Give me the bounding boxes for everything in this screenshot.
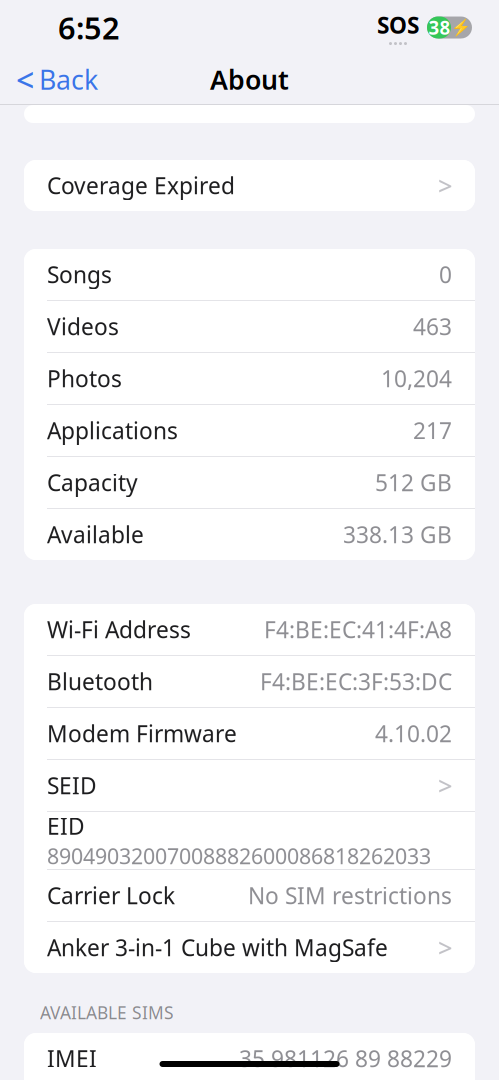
staticText: IMEI xyxy=(47,1043,97,1074)
staticText: 38 xyxy=(428,15,450,40)
button[interactable]: Applications xyxy=(24,405,475,456)
staticText: 463 xyxy=(413,311,452,341)
button[interactable]: Capacity xyxy=(24,457,475,508)
button[interactable]: Available xyxy=(24,509,475,560)
staticText: 217 xyxy=(413,415,452,445)
staticText: Wi-Fi Address xyxy=(47,614,191,644)
staticText: Bluetooth xyxy=(47,666,153,696)
button[interactable]: Videos xyxy=(24,301,475,352)
button[interactable]: Wi-Fi Address xyxy=(24,604,475,655)
button[interactable]: SEID xyxy=(24,760,475,811)
button[interactable]: Bluetooth xyxy=(24,656,475,707)
staticText: Back xyxy=(39,62,98,97)
button[interactable]: Anker 3-in-1 Cube with MagSafe xyxy=(24,922,475,973)
staticText: F4:BE:EC:3F:53:DC xyxy=(260,666,452,696)
button[interactable]: Coverage Expired xyxy=(24,160,475,211)
staticText: Modem Firmware xyxy=(47,718,237,748)
staticText: 338.13 GB xyxy=(343,519,452,549)
staticText: 512 GB xyxy=(375,467,452,497)
button[interactable]: < xyxy=(0,52,98,107)
staticText: 35 981126 89 88229 xyxy=(239,1043,452,1074)
staticText: Applications xyxy=(47,415,178,445)
button[interactable]: Photos xyxy=(24,353,475,404)
staticText: Carrier Lock xyxy=(47,880,175,910)
staticText: EID xyxy=(47,811,85,841)
staticText: F4:BE:EC:41:4F:A8 xyxy=(264,614,452,644)
staticText: SEID xyxy=(47,770,97,800)
staticText: ⚡ xyxy=(450,18,470,37)
staticText: SOS xyxy=(377,10,419,40)
button[interactable]: Modem Firmware xyxy=(24,708,475,759)
button[interactable]: Carrier Lock xyxy=(24,870,475,921)
staticText: > xyxy=(438,769,452,802)
staticText: 10,204 xyxy=(381,363,452,393)
staticText: 89049032007008882600086818262033 xyxy=(47,842,431,870)
staticText: > xyxy=(438,169,452,202)
staticText: Coverage Expired xyxy=(47,170,235,200)
staticText: < xyxy=(16,58,34,101)
button[interactable]: EID xyxy=(24,812,475,869)
staticText: Available xyxy=(47,519,144,549)
staticText: No SIM restrictions xyxy=(248,880,452,910)
staticText: > xyxy=(438,931,452,964)
staticText: About xyxy=(210,62,289,97)
button[interactable]: IMEI xyxy=(24,1033,475,1080)
staticText: 4.10.02 xyxy=(375,718,452,748)
staticText: Songs xyxy=(47,259,112,289)
staticText: 0 xyxy=(439,259,452,289)
staticText: Photos xyxy=(47,363,122,393)
staticText: AVAILABLE SIMS xyxy=(40,1001,174,1024)
staticText: Capacity xyxy=(47,467,138,497)
staticText: 6:52 xyxy=(58,7,120,48)
staticText: Anker 3-in-1 Cube with MagSafe xyxy=(47,932,388,962)
staticText: Videos xyxy=(47,311,119,341)
button[interactable]: Songs xyxy=(24,249,475,300)
